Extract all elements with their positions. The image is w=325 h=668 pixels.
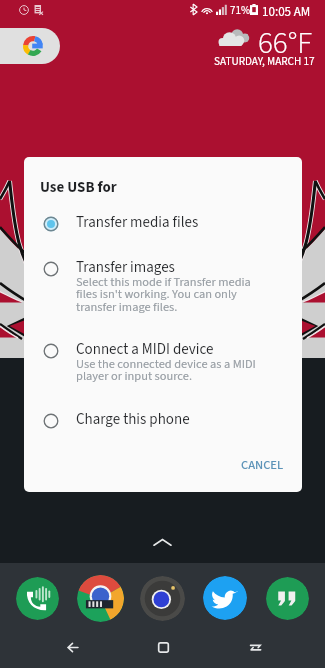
staticText: Connect a MIDI device	[76, 339, 214, 360]
staticText: Transfer media files	[76, 212, 199, 233]
button[interactable]: Home	[142, 626, 184, 668]
staticText: Transfer images	[76, 257, 175, 278]
staticText: Select this mode if Transfer media files…	[76, 273, 258, 316]
button[interactable]: CANCEL	[231, 450, 293, 480]
staticText: Charge this phone	[76, 409, 190, 430]
staticText: 10:05 AM	[262, 3, 311, 22]
staticText: Use USB for	[40, 177, 117, 198]
staticText: Use the connected device as a MIDI playe…	[76, 355, 258, 385]
button[interactable]: Connect a MIDI device	[24, 335, 302, 407]
button[interactable]: Back	[51, 626, 93, 668]
button[interactable]: Twitter	[203, 576, 247, 620]
staticText: SATURDAY, MARCH 17	[214, 54, 315, 70]
button[interactable]: Phone	[16, 577, 59, 620]
staticText: 71%	[230, 3, 250, 19]
button[interactable]: Transfer images	[24, 253, 302, 330]
button[interactable]: Charge this phone	[24, 405, 302, 437]
button[interactable]: Camera	[140, 576, 185, 621]
staticText: CANCEL	[241, 456, 284, 474]
button[interactable]: Recents	[234, 626, 276, 668]
button[interactable]: Chrome Beta	[77, 575, 124, 622]
button[interactable]: Transfer media files	[24, 208, 302, 240]
staticText: 66°F	[258, 21, 313, 65]
button[interactable]: Google search	[0, 28, 60, 64]
button[interactable]: Messages	[266, 577, 309, 620]
